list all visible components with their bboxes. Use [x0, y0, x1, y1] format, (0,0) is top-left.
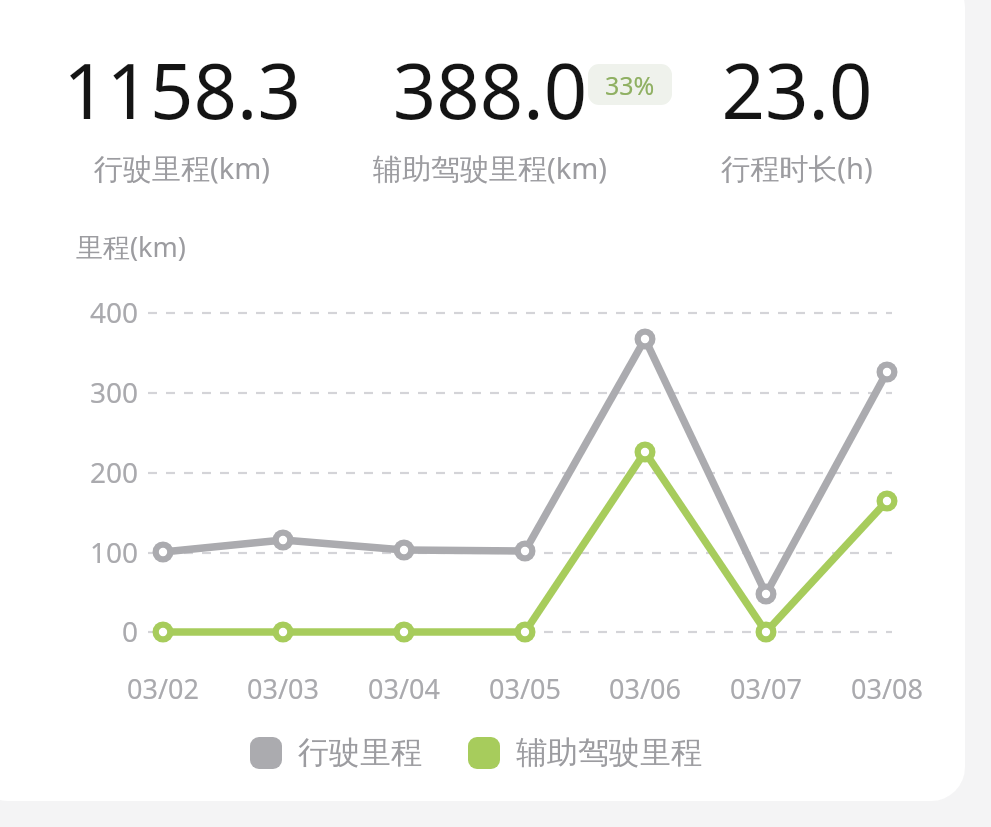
staticText: 200: [50, 453, 138, 491]
staticText: 388.0: [275, 38, 705, 142]
staticText: 03/04: [344, 670, 464, 707]
staticText: 03/05: [465, 670, 585, 707]
staticText: 03/06: [585, 670, 705, 707]
staticText: 400: [50, 293, 138, 331]
staticText: 03/08: [827, 670, 947, 707]
staticText: 行程时长(h): [582, 148, 991, 188]
button[interactable]: 388.0: [275, 38, 705, 188]
button[interactable]: 1158.3: [0, 38, 397, 188]
staticText: 里程(km): [76, 228, 186, 265]
button[interactable]: 33%: [588, 64, 672, 105]
staticText: 300: [50, 373, 138, 411]
button[interactable]: 23.0: [582, 38, 991, 188]
staticText: 行驶里程: [298, 733, 422, 772]
staticText: 行驶里程(km): [0, 148, 397, 188]
staticText: 03/03: [223, 670, 343, 707]
staticText: 100: [50, 533, 138, 571]
staticText: 23.0: [582, 38, 991, 142]
staticText: 33%: [605, 68, 655, 102]
button[interactable]: 行驶里程: [250, 733, 422, 772]
other: Mileage line chart: [0, 0, 991, 827]
button[interactable]: 辅助驾驶里程: [468, 733, 702, 772]
staticText: 03/07: [706, 670, 826, 707]
staticText: 1158.3: [0, 38, 397, 142]
staticText: 0: [50, 612, 138, 650]
staticText: 辅助驾驶里程: [516, 733, 702, 772]
staticText: 辅助驾驶里程(km): [275, 148, 705, 188]
staticText: 03/02: [103, 670, 223, 707]
